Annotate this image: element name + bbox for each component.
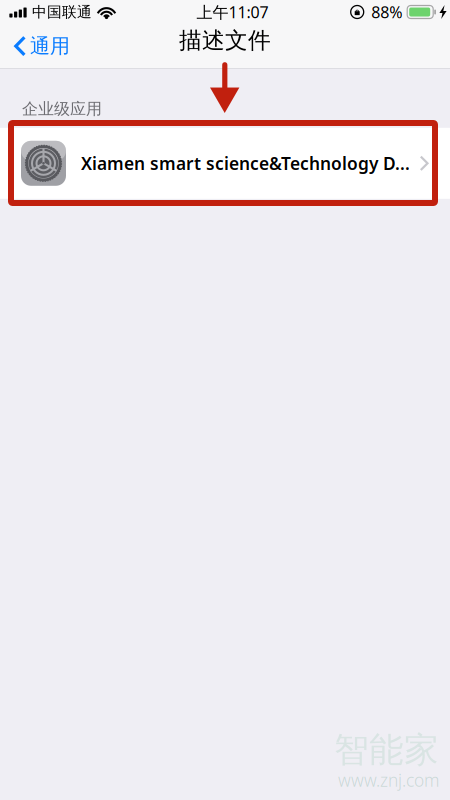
staticText: www.znj.com [338, 768, 439, 791]
staticText: 企业级应用 [22, 99, 102, 119]
staticText: 上午11:07 [197, 1, 269, 23]
staticText: 智能家 [334, 729, 439, 771]
button[interactable]: 通用 [0, 24, 80, 68]
staticText: 中国联通 [32, 3, 92, 21]
staticText: 88% [371, 1, 402, 23]
staticText: 通用 [30, 34, 70, 58]
button[interactable]: Xiamen smart science&Technology D... [0, 128, 450, 199]
staticText: Xiamen smart science&Technology D... [81, 152, 410, 175]
staticText: 描述文件 [179, 26, 271, 54]
